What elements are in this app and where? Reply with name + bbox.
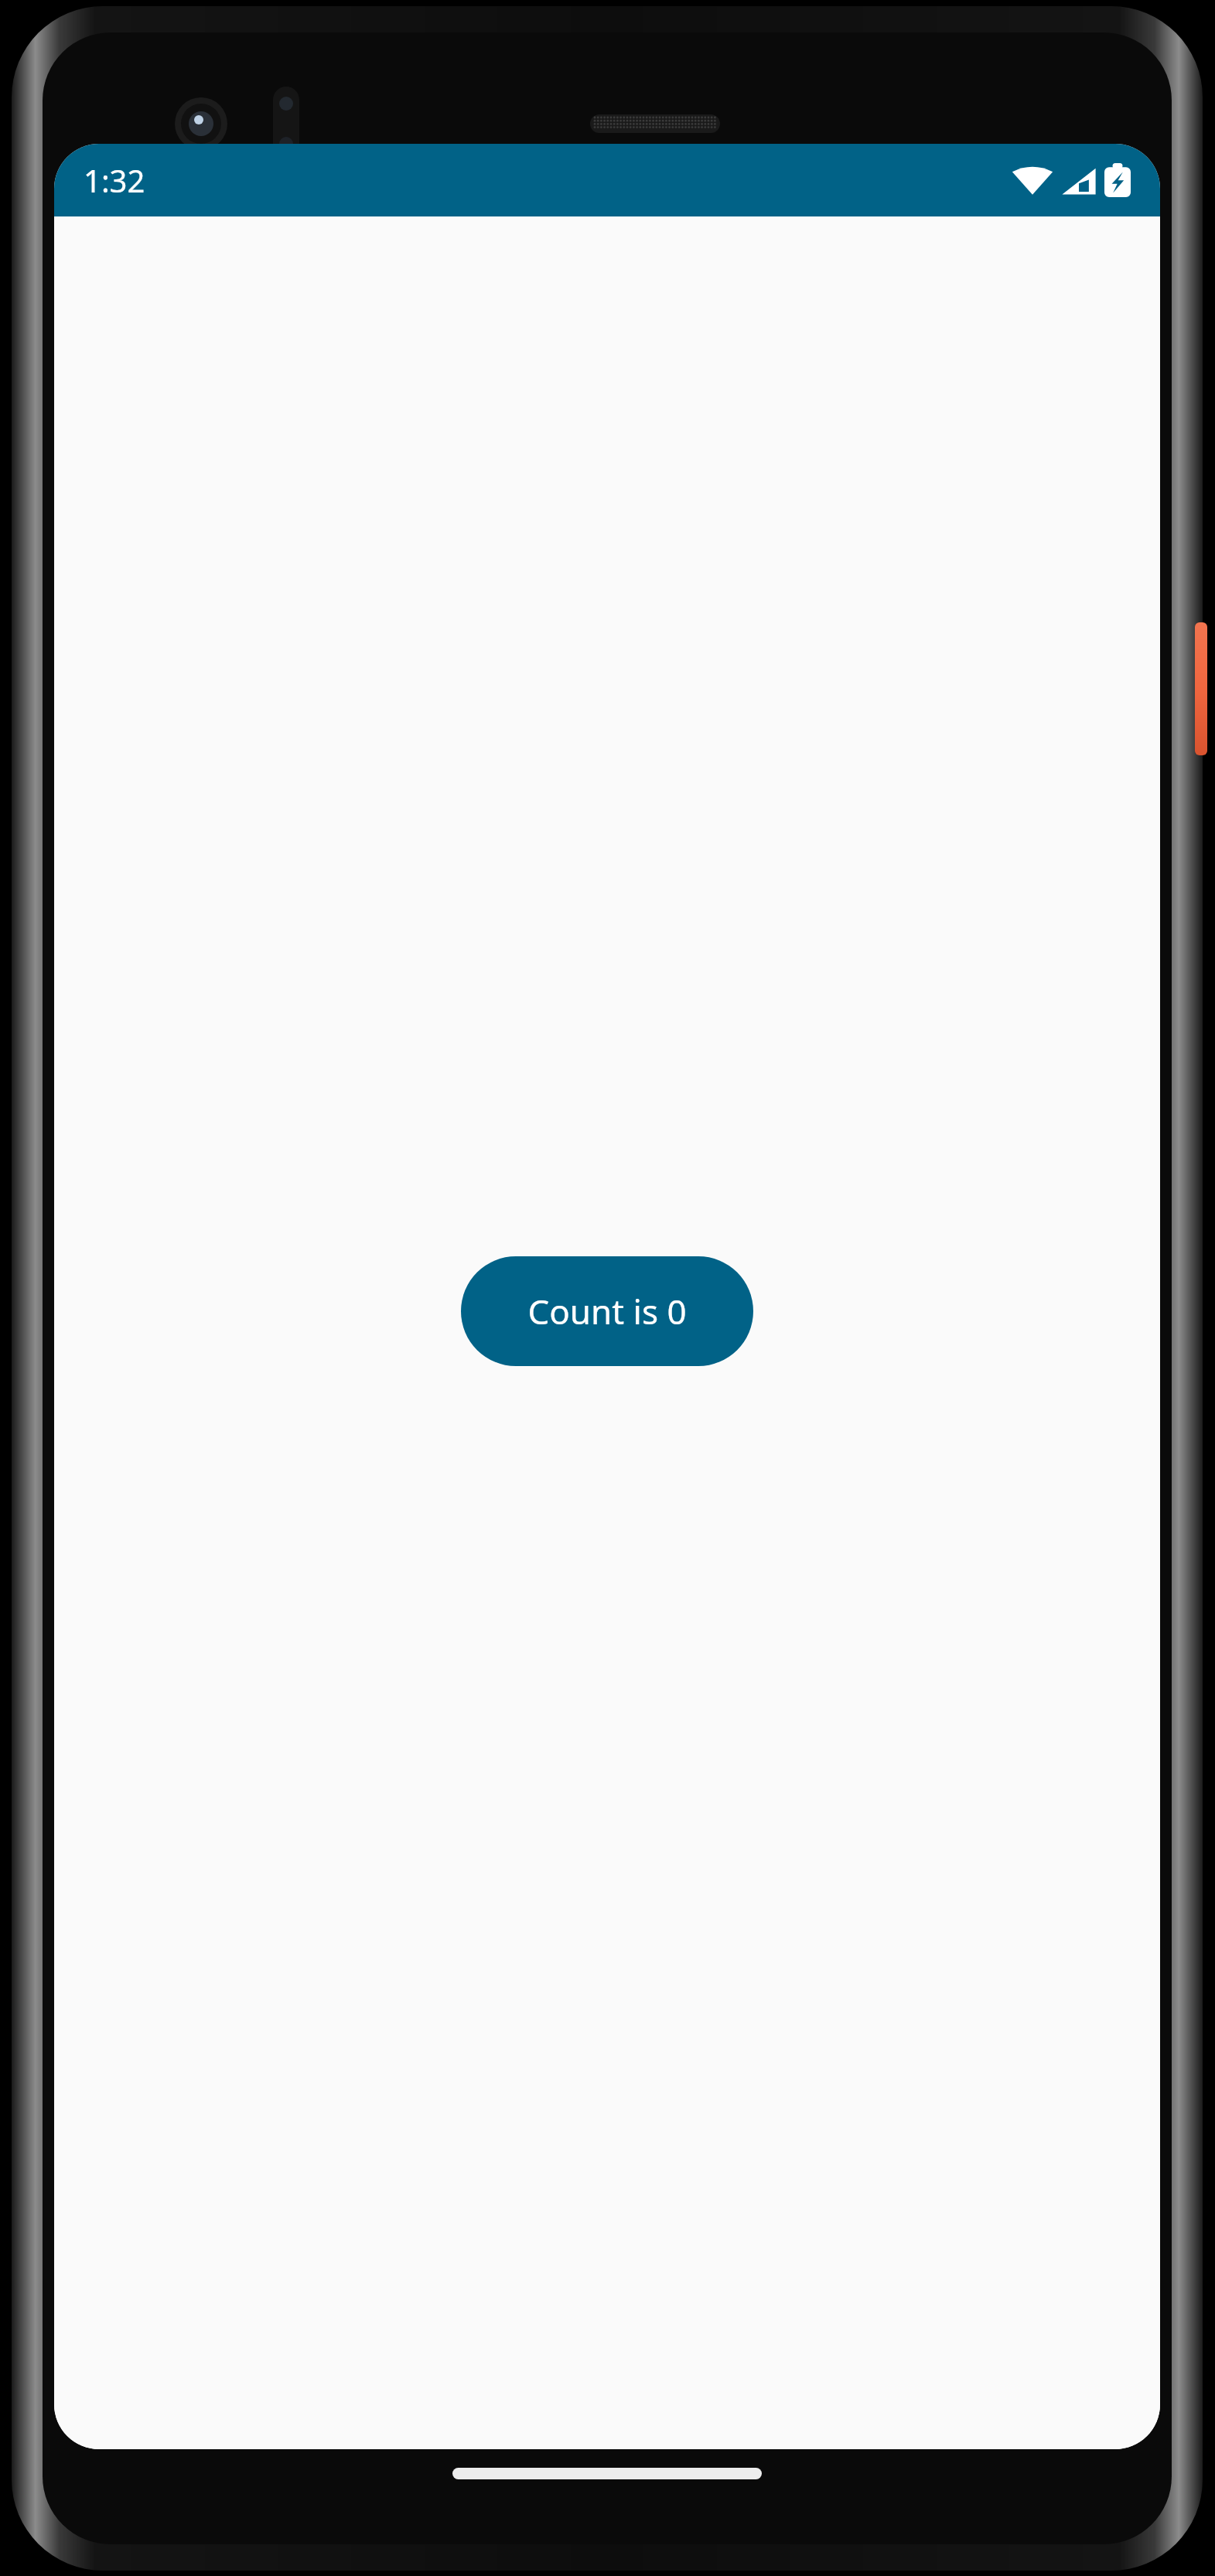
button[interactable]: Count is 0 bbox=[461, 1256, 753, 1366]
staticText: 1:32 bbox=[84, 159, 145, 201]
staticText: Count is 0 bbox=[527, 1288, 687, 1334]
